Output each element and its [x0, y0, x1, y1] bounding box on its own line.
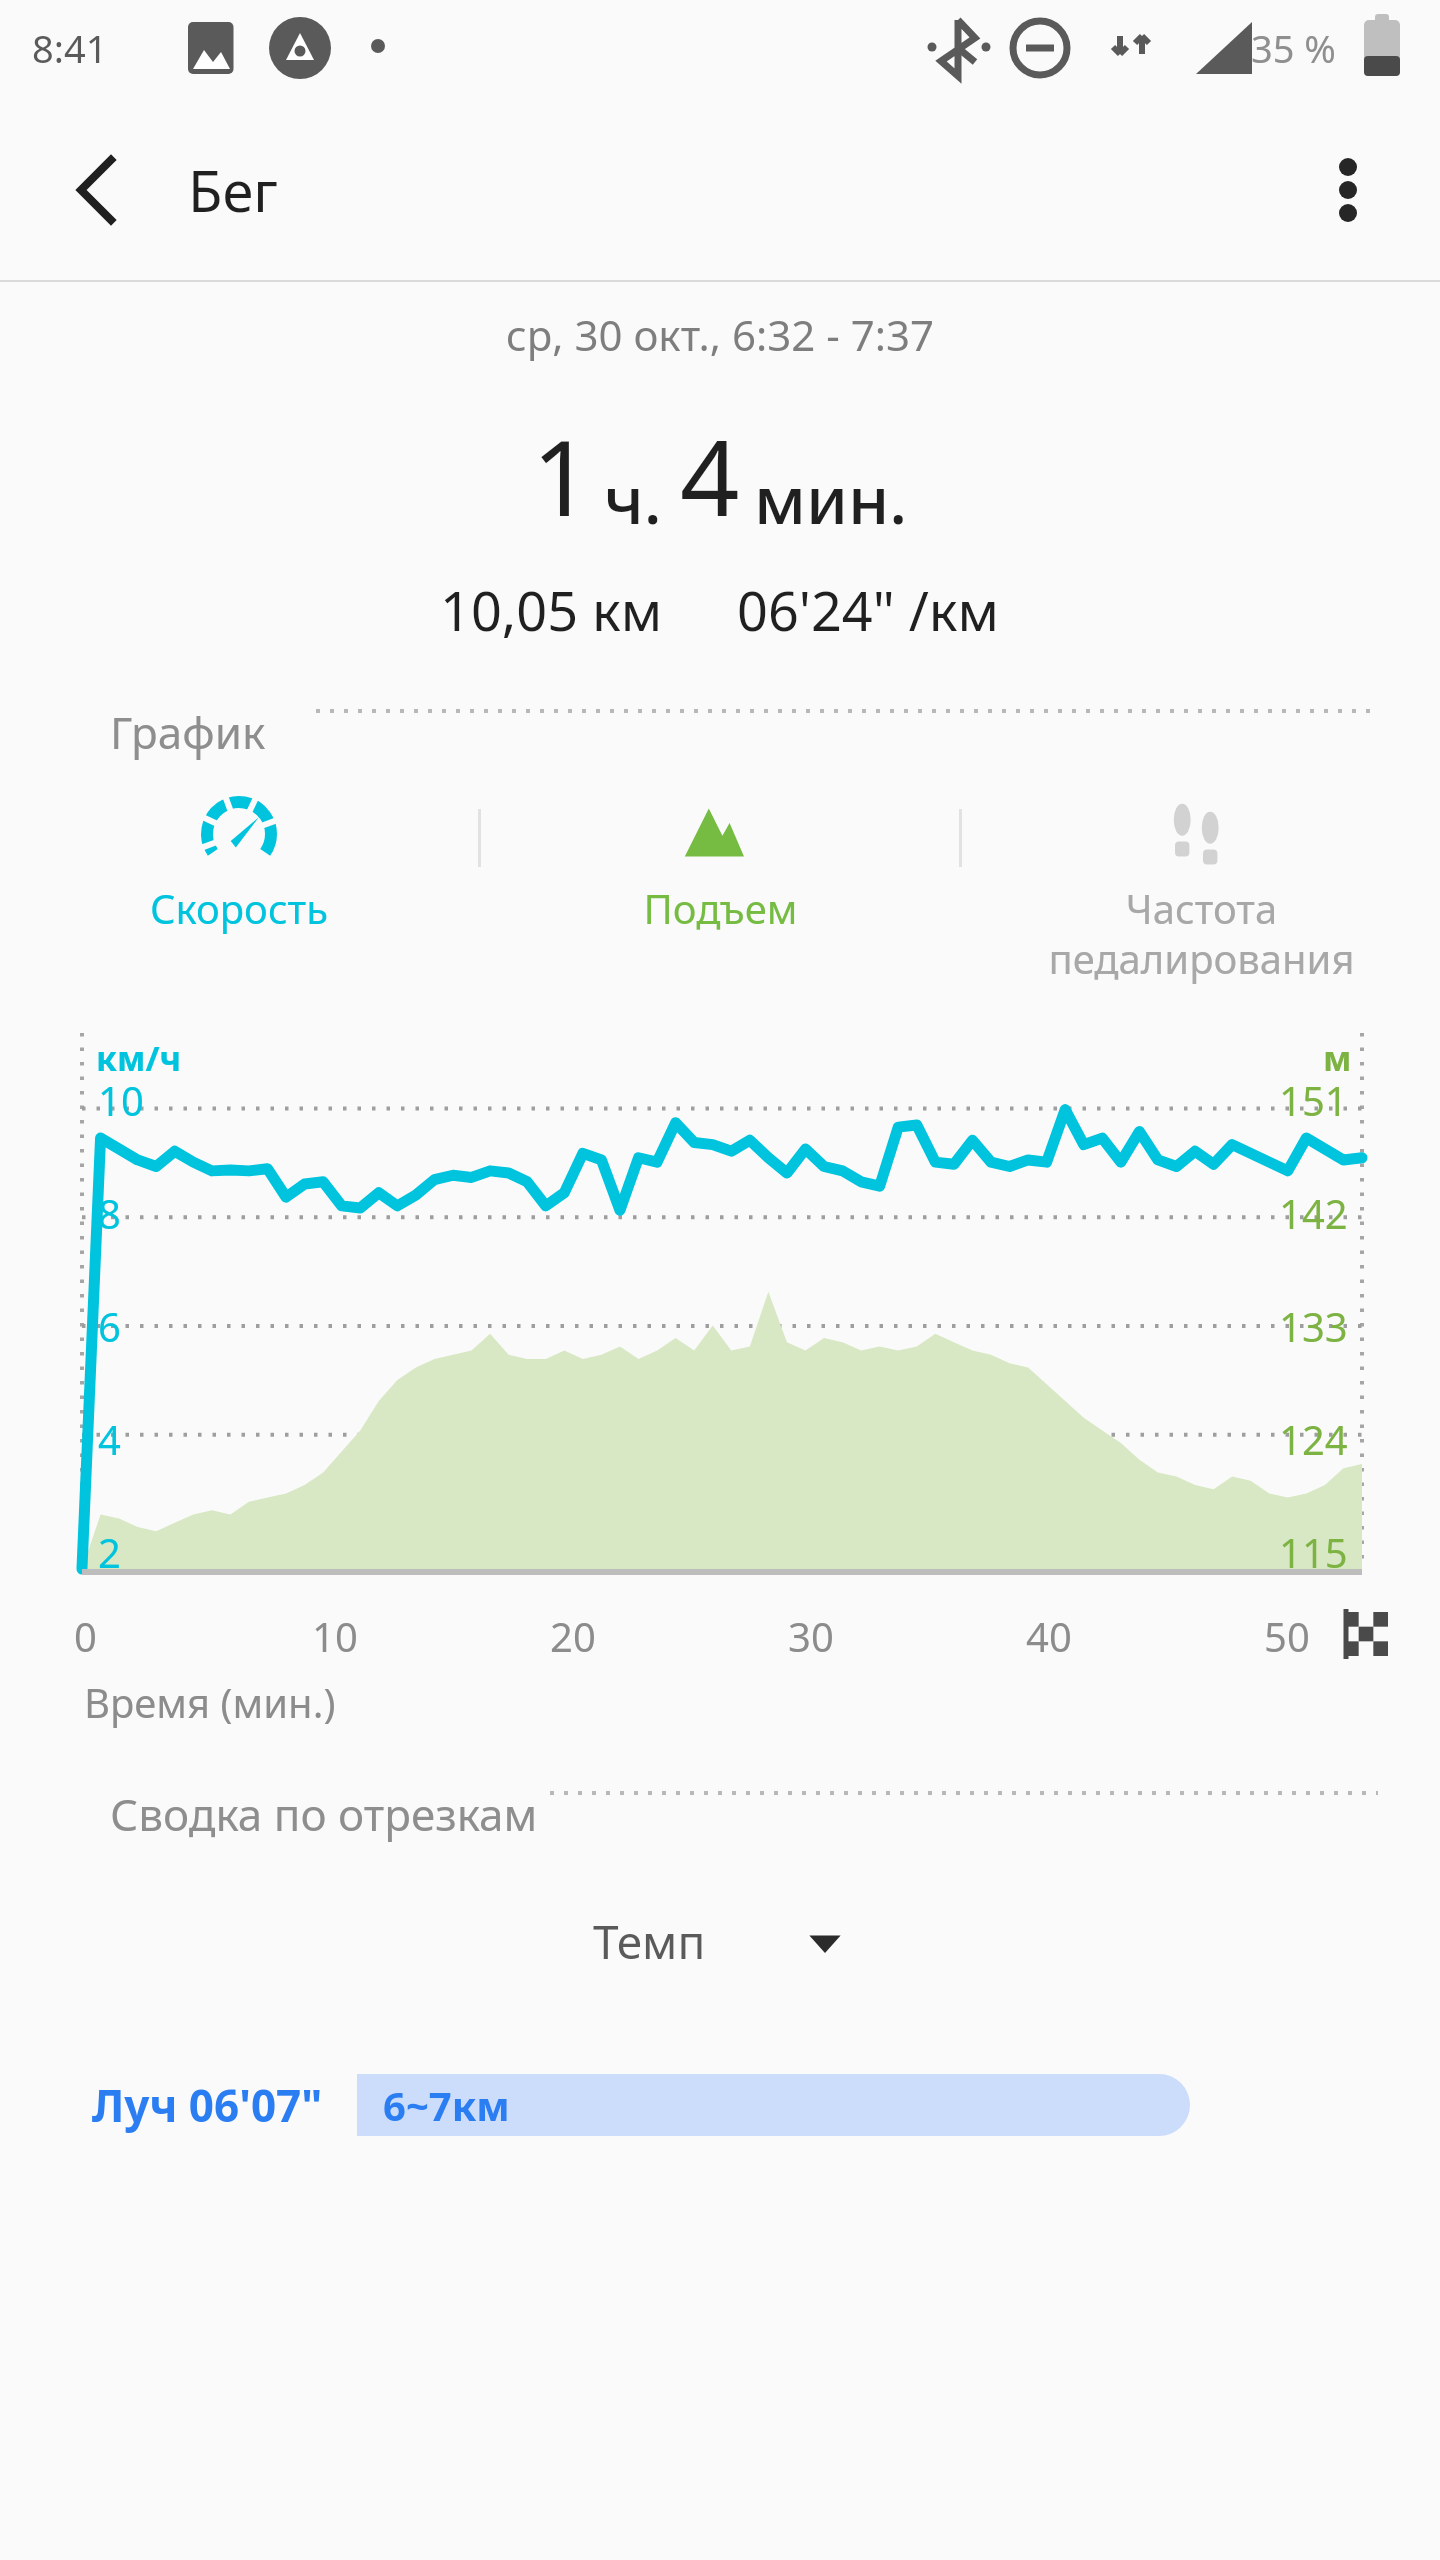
button[interactable]: Ещё: [1300, 142, 1396, 238]
staticText: ч.: [604, 453, 662, 543]
staticText: 50: [1264, 1609, 1310, 1663]
button[interactable]: Скорость: [0, 787, 478, 987]
staticText: Частота педалирования: [1048, 881, 1355, 986]
staticText: График: [110, 702, 266, 762]
staticText: 10: [98, 1073, 144, 1127]
staticText: ср, 30 окт., 6:32 - 7:37: [506, 306, 934, 363]
staticText: 30: [788, 1609, 834, 1663]
staticText: 35 %: [1251, 22, 1336, 74]
staticText: 2: [98, 1525, 121, 1579]
staticText: 1: [532, 405, 592, 547]
staticText: 142: [1279, 1186, 1348, 1240]
button[interactable]: Луч 06'07": [0, 2057, 1440, 2153]
staticText: 6~7км: [383, 2078, 510, 2132]
staticText: Сводка по отрезкам: [110, 1784, 538, 1844]
staticText: 10: [312, 1609, 358, 1663]
staticText: 40: [1026, 1609, 1072, 1663]
staticText: м: [1323, 1035, 1352, 1081]
staticText: 115: [1279, 1525, 1348, 1579]
staticText: 06'24" /км: [737, 573, 1000, 647]
staticText: 4: [680, 405, 740, 547]
staticText: Скорость: [150, 881, 328, 935]
staticText: 124: [1279, 1412, 1348, 1466]
staticText: 10,05 км: [440, 573, 663, 647]
button[interactable]: Темп: [593, 1910, 848, 1973]
staticText: 4: [98, 1412, 121, 1466]
staticText: Время (мин.): [84, 1675, 336, 1729]
staticText: 151: [1279, 1073, 1348, 1127]
staticText: 8:41: [32, 22, 108, 74]
staticText: км/ч: [96, 1035, 182, 1081]
staticText: 6: [98, 1299, 121, 1353]
button[interactable]: Частота педалирования: [962, 787, 1440, 987]
staticText: мин.: [754, 453, 908, 543]
button[interactable]: Назад: [52, 146, 140, 234]
staticText: 133: [1279, 1299, 1348, 1353]
button[interactable]: Подъем: [481, 787, 959, 987]
staticText: Подъем: [643, 881, 798, 935]
staticText: 8: [98, 1186, 121, 1240]
staticText: Темп: [593, 1910, 706, 1973]
staticText: 20: [550, 1609, 596, 1663]
staticText: 0: [74, 1609, 97, 1663]
staticText: Бег: [188, 152, 278, 228]
staticText: Луч 06'07": [92, 2075, 323, 2135]
